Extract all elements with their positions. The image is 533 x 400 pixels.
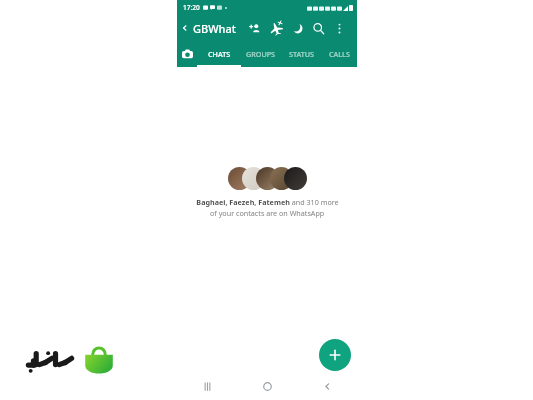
staticText: CALLS: [329, 49, 350, 59]
staticText: CHATS: [208, 49, 231, 59]
staticText: 17:20: [183, 3, 200, 12]
button[interactable]: CHATS: [197, 41, 241, 67]
button[interactable]: Search: [308, 15, 329, 41]
button[interactable]: Baghaei, Faezeh, Fatemeh and 310 more: [177, 167, 357, 218]
button[interactable]: Do not disturb: [287, 15, 308, 41]
button[interactable]: New chat: [319, 339, 351, 371]
staticText: STATUS: [289, 49, 314, 59]
staticText: Baghaei, Faezeh, Fatemeh and 310 more: [196, 197, 339, 207]
staticText: of your contacts are on WhatsApp: [210, 208, 325, 218]
staticText: GBWhat: [193, 21, 236, 36]
staticText: GROUPS: [246, 49, 276, 59]
button[interactable]: More options: [329, 15, 350, 41]
button[interactable]: STATUS: [281, 41, 321, 67]
button[interactable]: Recents: [177, 372, 237, 400]
button[interactable]: CALLS: [321, 41, 357, 67]
button[interactable]: Home: [237, 372, 297, 400]
button[interactable]: Camera: [177, 41, 197, 67]
button[interactable]: Back: [297, 372, 357, 400]
button[interactable]: GROUPS: [241, 41, 281, 67]
button[interactable]: Airplane mode: [266, 15, 287, 41]
button[interactable]: Back: [177, 15, 193, 41]
button[interactable]: Bazaar: [9, 333, 128, 390]
button[interactable]: Add contact: [245, 15, 266, 41]
